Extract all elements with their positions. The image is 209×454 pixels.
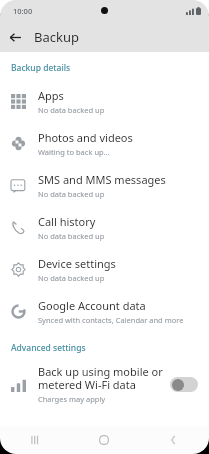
staticText: No data backed up: [38, 231, 105, 241]
button[interactable]: Back up using mobile or metered Wi-Fi da…: [0, 360, 209, 408]
staticText: Device settings: [38, 256, 116, 271]
staticText: Back up using mobile or metered Wi-Fi da…: [38, 364, 164, 392]
button[interactable]: Recents: [0, 426, 69, 454]
staticText: Apps: [38, 88, 64, 103]
staticText: SMS and MMS messages: [38, 172, 166, 187]
staticText: 10:00: [13, 6, 33, 16]
staticText: Advanced settings: [11, 342, 86, 354]
button[interactable]: Apps: [0, 80, 209, 122]
staticText: Synced with contacts, Calendar and more: [38, 315, 184, 325]
button[interactable]: Google Account data: [0, 290, 209, 332]
staticText: Call history: [38, 214, 96, 229]
staticText: Google Account data: [38, 298, 146, 313]
button[interactable]: Call history: [0, 206, 209, 248]
staticText: Photos and videos: [38, 130, 133, 145]
staticText: No data backed up: [38, 273, 105, 283]
button[interactable]: Back up using mobile data toggle: [170, 377, 198, 392]
staticText: No data backed up: [38, 189, 105, 199]
button[interactable]: Back: [0, 22, 30, 52]
button[interactable]: Photos and videos: [0, 122, 209, 164]
staticText: Backup details: [11, 62, 71, 74]
staticText: Waiting to back up...: [38, 147, 110, 157]
staticText: No data backed up: [38, 105, 105, 115]
button[interactable]: Home: [69, 426, 139, 454]
button[interactable]: SMS and MMS messages: [0, 164, 209, 206]
button[interactable]: Device settings: [0, 248, 209, 290]
button[interactable]: Back: [139, 426, 209, 454]
staticText: Charges may apply: [38, 394, 106, 404]
staticText: Backup: [34, 28, 79, 46]
